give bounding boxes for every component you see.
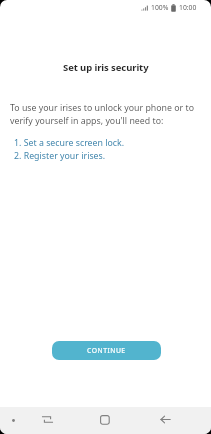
button[interactable]	[91, 410, 119, 429]
button[interactable]	[151, 410, 179, 429]
staticText: To use your irises to unlock your phone …	[10, 102, 195, 127]
staticText: 10:00	[179, 3, 197, 12]
button[interactable]	[33, 410, 61, 429]
button[interactable]: 1. Set a secure screen lock. 2. Register…	[14, 137, 125, 162]
button[interactable]	[9, 416, 17, 424]
button[interactable]: CONTINUE	[52, 341, 161, 360]
staticText: 100%	[151, 3, 169, 12]
staticText: Set up iris security	[63, 61, 149, 74]
staticText: CONTINUE	[87, 346, 126, 355]
